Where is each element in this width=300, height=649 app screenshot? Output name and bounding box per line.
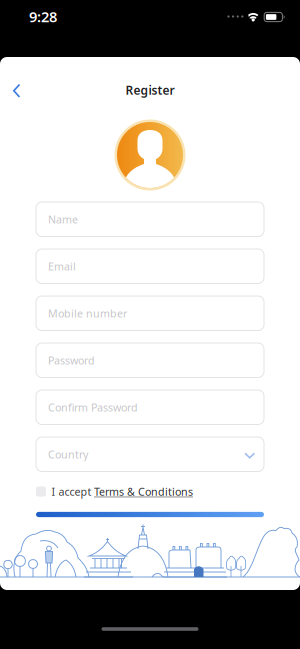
button[interactable]: Email <box>36 249 264 283</box>
button[interactable]: Password <box>36 343 264 377</box>
staticText: Name <box>48 212 78 226</box>
button[interactable]: Accept terms <box>36 486 46 496</box>
staticText: Register <box>125 82 174 98</box>
staticText: Confirm Password <box>48 400 138 414</box>
button[interactable]: Country <box>36 437 264 471</box>
staticText: I accept <box>51 484 91 499</box>
staticText: 9:28 <box>29 7 57 26</box>
button[interactable]: Confirm Password <box>36 390 264 424</box>
button[interactable]: Name <box>36 202 264 236</box>
staticText: Terms & Conditions <box>94 484 193 499</box>
button[interactable]: Terms & Conditions <box>94 484 193 499</box>
button[interactable]: Register <box>36 512 264 517</box>
button[interactable]: Mobile number <box>36 296 264 330</box>
button[interactable]: Back <box>13 84 21 98</box>
staticText: Mobile number <box>48 306 127 320</box>
staticText: Password <box>48 353 95 367</box>
staticText: Email <box>48 259 76 273</box>
staticText: Country <box>48 447 88 461</box>
